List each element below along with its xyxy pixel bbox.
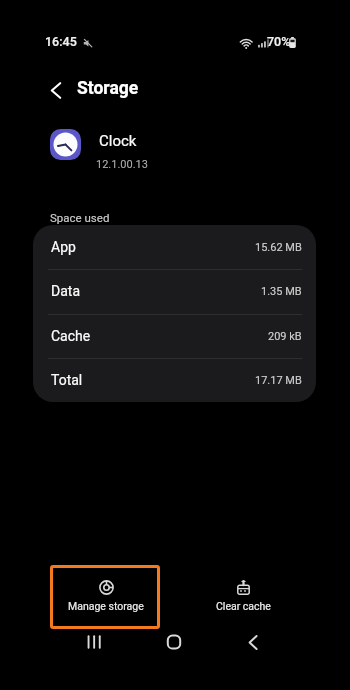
- staticText: 70%: [267, 34, 291, 49]
- button[interactable]: Data: [33, 269, 316, 313]
- staticText: Clear cache: [216, 600, 271, 612]
- button[interactable]: [154, 626, 194, 658]
- staticText: 16:45: [45, 34, 77, 49]
- staticText: App: [51, 239, 76, 255]
- staticText: Data: [51, 283, 80, 299]
- button[interactable]: Cache: [33, 314, 316, 358]
- button[interactable]: [74, 626, 114, 658]
- staticText: Space used: [50, 211, 110, 224]
- button[interactable]: App: [33, 225, 316, 269]
- staticText: 209 kB: [268, 330, 302, 343]
- button[interactable]: Total: [33, 358, 316, 402]
- button[interactable]: [233, 626, 273, 658]
- staticText: 12.1.00.13: [96, 158, 148, 171]
- staticText: 15.62 MB: [255, 241, 302, 254]
- button[interactable]: Manage storage: [53, 571, 158, 621]
- staticText: Cache: [51, 328, 91, 344]
- staticText: 17.17 MB: [255, 374, 302, 387]
- button[interactable]: [38, 75, 74, 105]
- staticText: Storage: [77, 78, 139, 99]
- staticText: Manage storage: [68, 600, 144, 612]
- staticText: Clock: [99, 132, 137, 150]
- staticText: 1.35 MB: [261, 285, 302, 298]
- button[interactable]: Clear cache: [191, 571, 296, 621]
- staticText: Total: [51, 372, 83, 388]
